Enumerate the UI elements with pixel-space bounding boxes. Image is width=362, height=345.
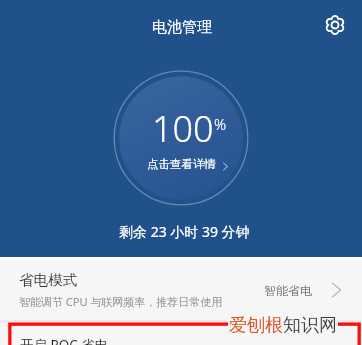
staticText: 爱刨根 <box>229 314 283 337</box>
staticText: 智能调节 CPU 与联网频率，推荐日常使用 <box>19 294 223 309</box>
button[interactable]: 100 <box>113 70 249 206</box>
staticText: 100 <box>152 104 214 153</box>
staticText: 剩余 23 小时 39 分钟 <box>119 222 250 241</box>
staticText: 省电模式 <box>19 271 77 289</box>
button[interactable]: Settings <box>323 13 347 37</box>
staticText: % <box>214 114 227 134</box>
staticText: 电池管理 <box>152 18 212 37</box>
staticText: 知识网 <box>283 314 337 337</box>
staticText: 开启 POC 省电 <box>20 336 109 345</box>
staticText: 点击查看详情 <box>147 157 216 171</box>
button[interactable]: 省电模式 <box>0 260 362 320</box>
button[interactable]: 开启 POC 省电 <box>0 323 362 345</box>
staticText: 智能省电 <box>264 283 312 298</box>
